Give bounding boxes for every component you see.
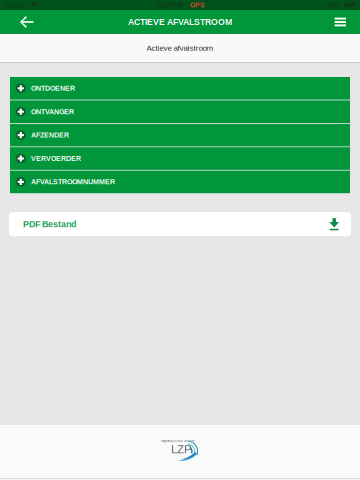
button[interactable]: ONTVANGER — [10, 100, 350, 123]
button[interactable]: Back — [0, 10, 41, 34]
staticText: AFZENDER — [31, 131, 69, 139]
staticText: GPS — [190, 1, 205, 9]
button[interactable]: AFVALSTROOMNUMMER — [10, 171, 350, 193]
staticText: VERVOERDER — [31, 155, 81, 162]
staticText: ONTVANGER — [31, 108, 74, 116]
staticText: PDF Bestand — [23, 219, 76, 229]
staticText: AFVALSTROOMNUMMER — [31, 178, 115, 186]
button[interactable]: Menu — [327, 10, 360, 34]
staticText: hoogwaardig circulair verwerken — [161, 440, 194, 443]
staticText: ONTDOENER — [31, 84, 75, 92]
staticText: Carrier — [4, 1, 28, 9]
button[interactable]: VERVOERDER — [10, 147, 350, 170]
staticText: 2:58 PM — [156, 1, 183, 9]
staticText: ACTIEVE AFVALSTROOM — [128, 17, 232, 27]
button[interactable]: PDF Bestand — [9, 212, 351, 236]
staticText: LZP — [171, 443, 192, 456]
staticText: 100% — [324, 1, 342, 9]
staticText: Actieve afvalstroom — [146, 43, 213, 52]
button[interactable]: AFZENDER — [10, 124, 350, 146]
button[interactable]: ONTDOENER — [10, 77, 350, 100]
